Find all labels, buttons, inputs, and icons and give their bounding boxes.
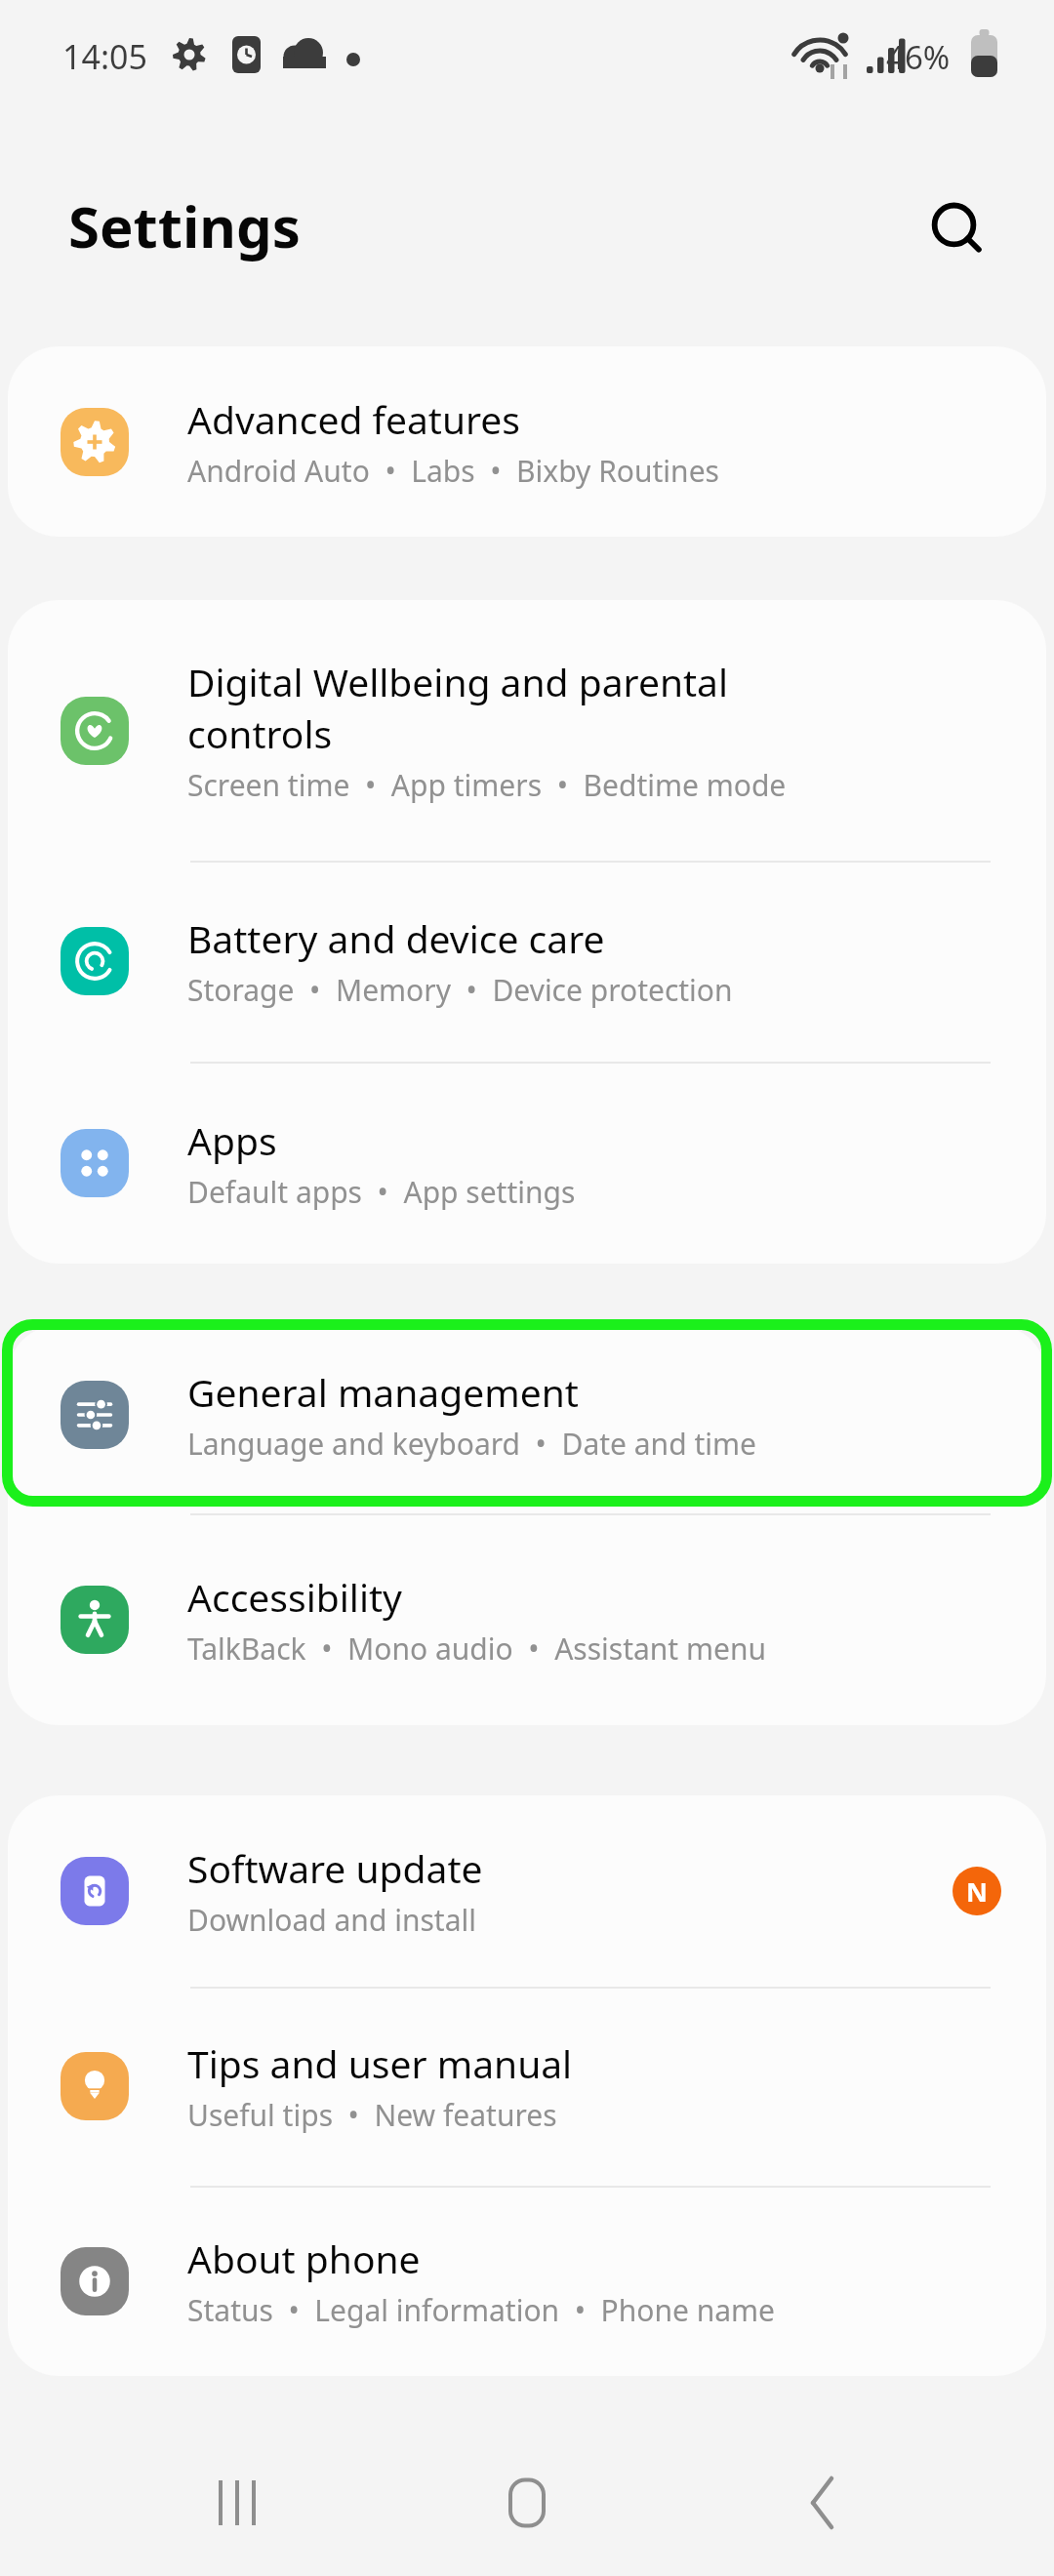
staticText: Android Auto • Labs • Bixby Routines — [187, 451, 719, 491]
staticText: Apps — [187, 1114, 277, 1166]
staticText: Language and keyboard • Date and time — [187, 1424, 756, 1464]
staticText: About phone — [187, 2233, 421, 2284]
staticText: Storage • Memory • Device protection — [187, 970, 733, 1010]
staticText: TalkBack • Mono audio • Assistant menu — [187, 1629, 767, 1669]
staticText: Software update — [187, 1842, 483, 1894]
staticText: Download and install — [187, 1900, 476, 1940]
staticText: Accessibility — [187, 1571, 402, 1623]
staticText: 46% — [886, 35, 951, 79]
button[interactable]: General management — [8, 1325, 1046, 1505]
button[interactable]: Recent apps — [164, 2430, 310, 2576]
staticText: controls — [187, 707, 333, 759]
staticText: N — [966, 1873, 988, 1910]
button[interactable]: Search — [908, 180, 1009, 281]
staticText: Settings — [68, 187, 301, 264]
button[interactable]: Battery and device care — [8, 861, 1046, 1062]
staticText: General management — [187, 1366, 579, 1418]
staticText: Screen time • App timers • Bedtime mode — [187, 765, 787, 805]
staticText: Status • Legal information • Phone name — [187, 2290, 776, 2330]
button[interactable]: Apps — [8, 1062, 1046, 1264]
staticText: Digital Wellbeing and parental — [187, 656, 729, 707]
button[interactable]: Digital Wellbeing and parental — [8, 600, 1046, 861]
button[interactable]: Back — [751, 2430, 898, 2576]
staticText: Useful tips • New features — [187, 2095, 557, 2135]
button[interactable]: Software update — [8, 1795, 1046, 1987]
staticText: Default apps • App settings — [187, 1172, 576, 1212]
button[interactable]: Home — [454, 2430, 600, 2576]
button[interactable]: Accessibility — [8, 1513, 1046, 1725]
staticText: Advanced features — [187, 393, 521, 445]
staticText: 14:05 — [62, 34, 147, 79]
button[interactable]: About phone — [8, 2186, 1046, 2376]
staticText: Battery and device care — [187, 912, 605, 964]
button[interactable]: Tips and user manual — [8, 1987, 1046, 2186]
button[interactable]: Advanced features — [8, 346, 1046, 537]
staticText: Tips and user manual — [187, 2037, 573, 2089]
